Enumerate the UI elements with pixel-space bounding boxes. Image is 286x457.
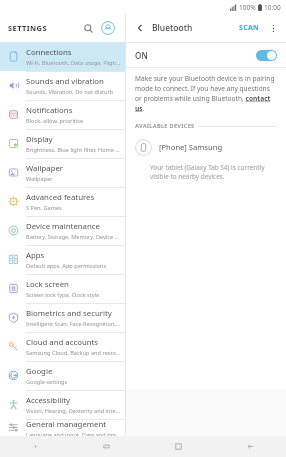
button[interactable]: Cloud and accounts [0, 332, 125, 361]
staticText: Brightness, Blue light filter, Home sc..… [26, 146, 121, 154]
staticText: Device maintenance [26, 221, 100, 232]
staticText: Display [26, 134, 53, 145]
staticText: Notifications [26, 105, 73, 116]
staticText: Accessibility [26, 395, 70, 406]
button[interactable]: Back [132, 20, 148, 36]
staticText: Lock screen [26, 279, 69, 290]
button[interactable]: Sounds and vibration [0, 71, 125, 100]
staticText: Sounds, Vibration, Do not disturb [26, 88, 114, 96]
staticText: Connections [26, 47, 72, 58]
button[interactable]: Accessibility [0, 390, 125, 419]
button[interactable]: Search [79, 19, 97, 37]
staticText: Your tablet (Galaxy Tab S4) is currently… [150, 163, 274, 181]
button[interactable]: SCAN [236, 21, 263, 35]
staticText: S Pen, Games [26, 204, 62, 212]
staticText: Apps [26, 250, 45, 261]
staticText: 100% [239, 3, 256, 12]
staticText: Sounds and vibration [26, 76, 104, 87]
staticText: Cloud and accounts [26, 337, 99, 348]
staticText: Block, allow, prioritise [26, 117, 84, 125]
staticText: 10:00 [264, 3, 281, 12]
staticText: Screen lock type, Clock style [26, 291, 100, 299]
button[interactable]: Lock screen [0, 274, 125, 303]
staticText: Wi-Fi, Bluetooth, Data usage, Flight... [26, 59, 121, 67]
staticText: Google [26, 366, 53, 377]
button[interactable]: Advanced features [0, 187, 125, 216]
button[interactable]: General management [0, 419, 125, 436]
staticText: Battery, Storage, Memory, Device se... [26, 233, 121, 241]
button[interactable]: Account [99, 19, 117, 37]
button[interactable]: Notifications [0, 100, 125, 129]
button[interactable]: Apps [0, 245, 125, 274]
button[interactable]: Device maintenance [0, 216, 125, 245]
staticText: Wallpaper [26, 163, 64, 174]
staticText: Make sure your Bluetooth device is in pa… [135, 74, 277, 113]
staticText: Google settings [26, 378, 68, 386]
staticText: Bluetooth [152, 22, 193, 34]
staticText: General management [26, 419, 107, 430]
staticText: Biometrics and security [26, 308, 112, 319]
staticText: Samsung Cloud, Backup and restor... [26, 349, 121, 357]
staticText: AVAILABLE DEVICES [135, 122, 195, 130]
staticText: SCAN [239, 23, 260, 33]
staticText: Wallpaper [26, 175, 53, 183]
staticText: ON [135, 50, 149, 61]
staticText: SETTINGS [8, 23, 47, 33]
staticText: [Phone] Samsung [159, 142, 223, 152]
button[interactable]: Bluetooth toggle [256, 50, 277, 61]
button[interactable]: Recent apps [71, 436, 142, 457]
staticText: Vision, Hearing, Dexterity and intera... [26, 407, 121, 415]
button[interactable]: Biometrics and security [0, 303, 125, 332]
staticText: Default apps, App permissions [26, 262, 107, 270]
staticText: Advanced features [26, 192, 95, 203]
button[interactable]: More options [266, 21, 280, 35]
button[interactable]: Google [0, 361, 125, 390]
button[interactable]: [Phone] Samsung [126, 135, 286, 159]
staticText: Language and input, Date and time,... [26, 431, 121, 436]
button[interactable]: Wallpaper [0, 158, 125, 187]
button[interactable]: Display [0, 129, 125, 158]
button[interactable]: Home [142, 436, 214, 457]
button[interactable]: Back [214, 436, 286, 457]
button[interactable]: Connections [0, 42, 125, 71]
staticText: Intelligent Scan, Face Recognition,... [26, 320, 121, 328]
